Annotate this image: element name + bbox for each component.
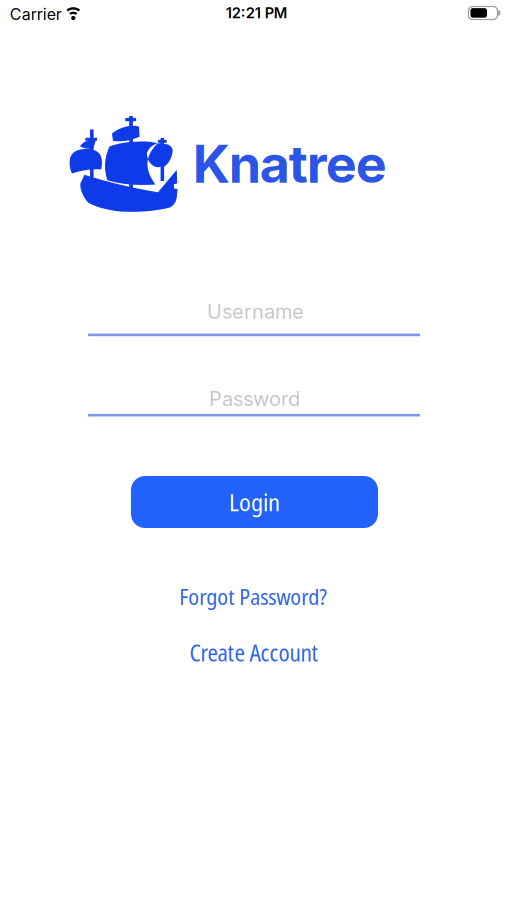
button[interactable]: Username [88,283,420,339]
staticText: Password [209,387,300,410]
staticText: Create Account [189,637,318,668]
staticText: Knatree [193,133,387,194]
staticText: Carrier [10,5,62,24]
button[interactable]: Create Account [189,637,318,668]
button[interactable]: Password [88,375,420,431]
staticText: Username [207,300,304,323]
button[interactable]: Login [131,476,378,528]
staticText: Login [229,486,280,518]
staticText: 12:21 PM [226,4,288,21]
staticText: Forgot Password? [179,581,327,611]
button[interactable]: Forgot Password? [179,581,327,611]
